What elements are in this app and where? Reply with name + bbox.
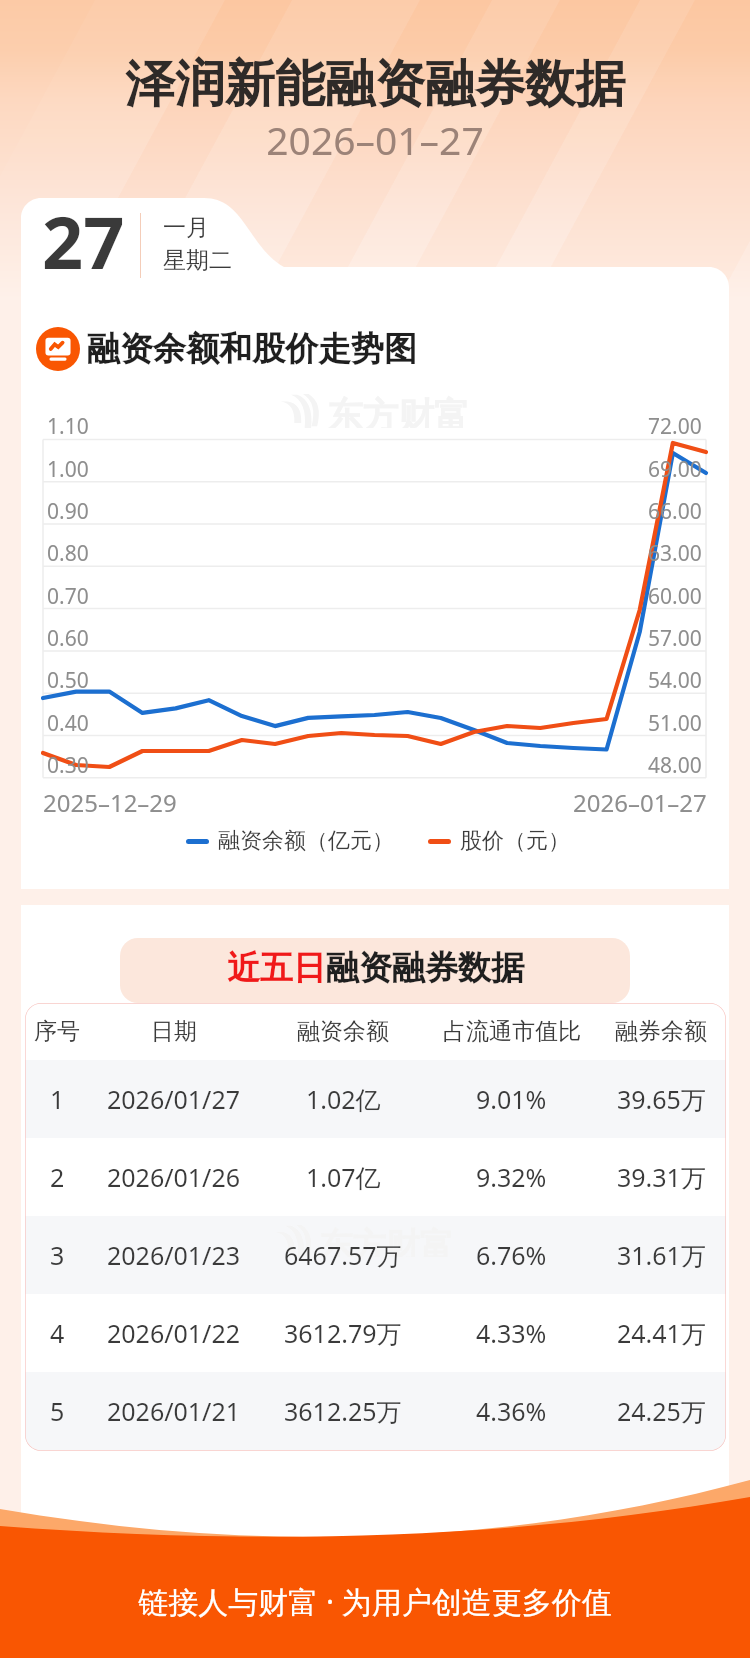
staticText: 3 [50, 1238, 65, 1272]
staticText: 72.00 [648, 412, 702, 441]
button[interactable]: 5 [25, 1372, 726, 1450]
staticText: 2026/01/27 [107, 1082, 241, 1116]
staticText: 2026/01/22 [107, 1316, 241, 1350]
staticText: 39.65万 [617, 1082, 706, 1116]
staticText: 63.00 [648, 539, 702, 568]
staticText: 泽润新能融资融券数据 [0, 53, 750, 116]
staticText: 4.33% [476, 1316, 547, 1350]
staticText: 0.50 [47, 666, 89, 695]
staticText: 54.00 [648, 666, 702, 695]
staticText: 9.01% [476, 1082, 547, 1116]
staticText: 2026/01/21 [107, 1394, 241, 1428]
button[interactable]: 3 [25, 1216, 726, 1294]
staticText: 51.00 [648, 709, 702, 738]
staticText: 1 [50, 1082, 65, 1116]
button[interactable]: 4 [25, 1294, 726, 1372]
staticText: 融资余额（亿元） [218, 827, 394, 855]
button[interactable]: 2 [25, 1138, 726, 1216]
staticText: 39.31万 [617, 1160, 706, 1194]
staticText: 0.30 [47, 751, 89, 780]
other: 融资余额和股价走势图 [36, 327, 80, 371]
staticText: 星期二 [163, 246, 232, 275]
staticText: 融资余额 [297, 1017, 389, 1046]
staticText: 0.70 [47, 582, 89, 611]
staticText: 2 [50, 1160, 65, 1194]
staticText: 24.41万 [617, 1316, 706, 1350]
staticText: 链接人与财富 · 为用户创造更多价值 [0, 1581, 750, 1622]
staticText: 0.40 [47, 709, 89, 738]
staticText: 东方财富 [327, 394, 470, 428]
staticText: 近五日 [227, 947, 326, 989]
staticText: 60.00 [648, 582, 702, 611]
button[interactable]: 序号 [25, 1003, 726, 1060]
staticText: 66.00 [648, 497, 702, 526]
staticText: 27 [42, 192, 125, 290]
staticText: 1.10 [47, 412, 89, 441]
staticText: 31.61万 [617, 1238, 706, 1272]
staticText: 6.76% [476, 1238, 547, 1272]
staticText: 日期 [151, 1017, 197, 1046]
staticText: 2026/01/23 [107, 1238, 241, 1272]
staticText: 0.80 [47, 539, 89, 568]
staticText: 融资余额和股价走势图 [87, 328, 417, 370]
staticText: 2026–01–27 [573, 786, 707, 819]
staticText: 4.36% [476, 1394, 547, 1428]
staticText: 3612.25万 [284, 1394, 402, 1428]
staticText: 69.00 [648, 455, 702, 484]
staticText: 股价（元） [460, 827, 570, 855]
staticText: 占流通市值比 [443, 1017, 581, 1046]
staticText: 融券余额 [615, 1017, 707, 1046]
staticText: 57.00 [648, 624, 702, 653]
staticText: 东方财富 [319, 1225, 454, 1257]
staticText: 2026/01/26 [107, 1160, 241, 1194]
staticText: 5 [50, 1394, 65, 1428]
staticText: 0.60 [47, 624, 89, 653]
staticText: 0.90 [47, 497, 89, 526]
staticText: 序号 [34, 1017, 80, 1046]
staticText: 9.32% [476, 1160, 547, 1194]
button[interactable]: 1 [25, 1060, 726, 1138]
staticText: 48.00 [648, 751, 702, 780]
button[interactable]: 融资余额和股价走势图 [36, 327, 417, 371]
staticText: 3612.79万 [284, 1316, 402, 1350]
staticText: 1.00 [47, 455, 89, 484]
staticText: 融资融券数据 [326, 947, 524, 989]
staticText: 2026–01–27 [0, 113, 750, 166]
staticText: 24.25万 [617, 1394, 706, 1428]
staticText: 2025–12–29 [43, 786, 177, 819]
staticText: 1.07亿 [306, 1160, 381, 1194]
staticText: 6467.57万 [284, 1238, 402, 1272]
staticText: 4 [50, 1316, 65, 1350]
staticText: 1.02亿 [306, 1082, 381, 1116]
staticText: 一月 [163, 213, 209, 242]
